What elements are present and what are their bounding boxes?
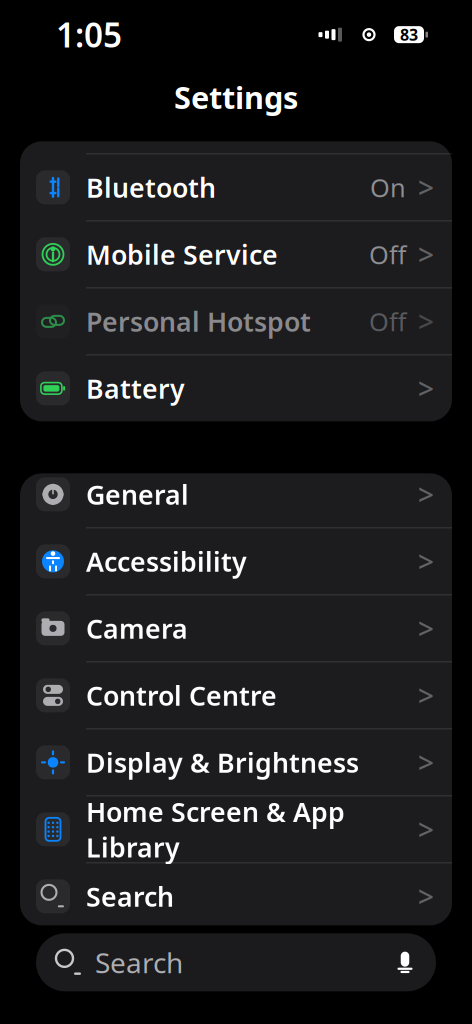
button[interactable]: Mobile Service <box>20 221 452 287</box>
staticText: > <box>418 370 434 407</box>
staticText: Accessibility <box>86 544 247 579</box>
button[interactable]: Personal Hotspot <box>20 288 452 354</box>
button[interactable]: Battery <box>20 355 452 421</box>
button[interactable]: Accessibility <box>20 528 452 594</box>
button[interactable]: General <box>20 461 452 527</box>
staticText: Camera <box>86 611 188 646</box>
staticText: General <box>86 477 189 512</box>
staticText: Home Screen & App Library <box>86 794 345 865</box>
staticText: Bluetooth <box>86 170 216 205</box>
button[interactable]: Control Centre <box>20 662 452 728</box>
button[interactable]: Search <box>36 933 436 991</box>
staticText: > <box>418 169 434 206</box>
staticText: > <box>418 878 434 915</box>
staticText: > <box>418 236 434 273</box>
staticText: 83 <box>400 24 418 45</box>
staticText: > <box>418 543 434 580</box>
staticText: Control Centre <box>86 678 277 713</box>
button[interactable]: Home Screen & App Library <box>20 796 452 862</box>
staticText: > <box>418 677 434 714</box>
staticText: Settings <box>174 77 298 117</box>
button[interactable]: Display & Brightness <box>20 729 452 795</box>
staticText: > <box>418 811 434 848</box>
staticText: Off <box>369 304 406 338</box>
staticText: > <box>418 476 434 513</box>
staticText: Off <box>369 237 406 271</box>
staticText: > <box>418 744 434 781</box>
button[interactable]: Camera <box>20 595 452 661</box>
button[interactable]: Search <box>20 863 452 929</box>
staticText: 1:05 <box>56 12 122 57</box>
staticText: Display & Brightness <box>86 745 359 780</box>
staticText: > <box>418 303 434 340</box>
staticText: Mobile Service <box>86 237 278 272</box>
staticText: Battery <box>86 371 185 406</box>
button[interactable]: Bluetooth <box>20 154 452 220</box>
staticText: > <box>418 610 434 647</box>
staticText: On <box>370 170 406 204</box>
staticText: Personal Hotspot <box>86 304 311 339</box>
staticText: Search <box>86 879 174 914</box>
staticText: Search <box>95 944 183 981</box>
